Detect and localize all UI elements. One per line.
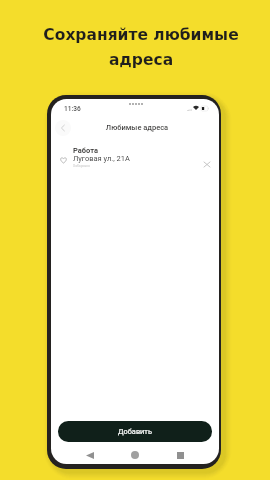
staticText: Хабаровск [73, 164, 91, 168]
staticText: Любимые адреса [53, 123, 219, 132]
button[interactable]: Удалить [199, 157, 214, 172]
button[interactable]: Недавние приложения [171, 446, 189, 464]
button[interactable]: Назад [55, 120, 71, 136]
button[interactable]: Добавить [58, 421, 212, 442]
button[interactable]: Главный экран [126, 446, 144, 464]
button[interactable]: Назад [81, 446, 99, 464]
staticText: 11:36 [64, 105, 81, 113]
staticText: Работа [73, 146, 99, 155]
staticText: Луговая ул., 21А [73, 154, 130, 163]
staticText: Сохраняйте любимые адреса [6, 26, 270, 68]
button[interactable]: Работа [51, 143, 219, 171]
staticText: Добавить [118, 427, 152, 436]
